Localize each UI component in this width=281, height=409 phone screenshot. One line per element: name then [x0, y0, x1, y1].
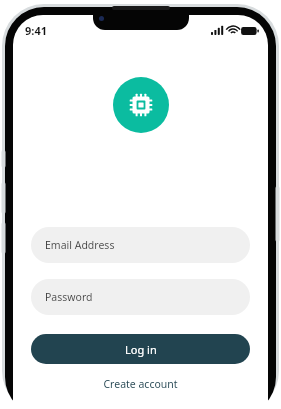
staticText: Create account — [103, 377, 178, 391]
other: App logo — [113, 77, 169, 133]
button[interactable]: Password — [31, 279, 250, 315]
button[interactable]: Create account — [13, 375, 268, 393]
staticText: Email Address — [45, 238, 115, 252]
staticText: Password — [45, 290, 93, 304]
staticText: Log in — [125, 342, 157, 357]
button[interactable]: Email Address — [31, 227, 250, 263]
button[interactable]: Log in — [31, 334, 250, 364]
staticText: 9:41 — [25, 23, 47, 38]
